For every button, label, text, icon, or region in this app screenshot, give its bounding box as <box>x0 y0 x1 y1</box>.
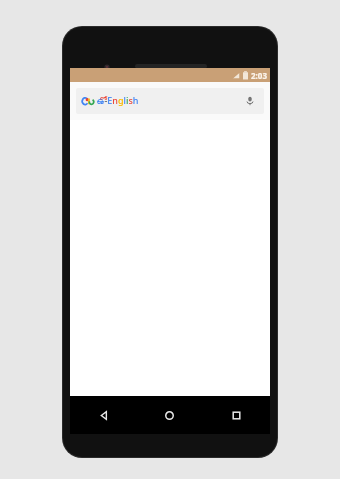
button[interactable]: Back <box>70 396 136 434</box>
button[interactable]: Recent apps <box>203 396 270 434</box>
button[interactable]: Voice search <box>242 93 258 109</box>
staticText: 2:03 <box>251 70 267 81</box>
staticText: ఉో-English <box>97 94 139 108</box>
button[interactable]: ఉో-English <box>76 88 264 114</box>
button[interactable]: Home <box>136 396 203 434</box>
